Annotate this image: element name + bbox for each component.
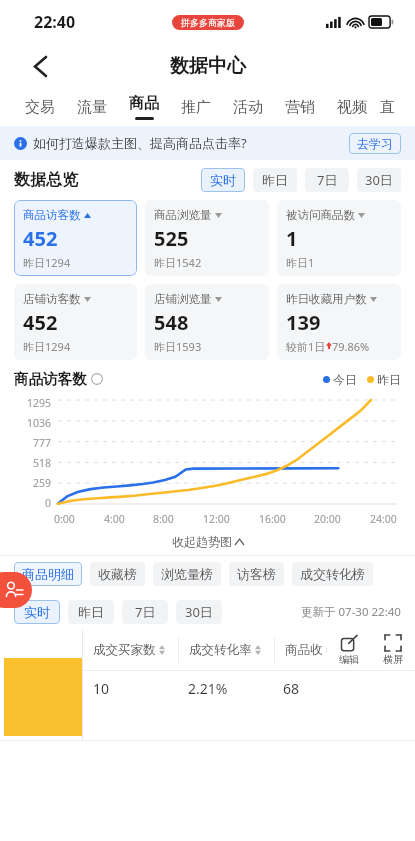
- staticText: 昨日1294: [23, 339, 71, 352]
- button[interactable]: 实时: [14, 600, 60, 624]
- staticText: 777: [33, 436, 52, 450]
- button[interactable]: 实时: [201, 168, 245, 192]
- button[interactable]: Help: [91, 373, 103, 385]
- staticText: 收起趋势图: [172, 534, 232, 549]
- staticText: 昨日1542: [154, 255, 202, 268]
- staticText: 10: [93, 679, 110, 698]
- staticText: 昨日: [377, 372, 401, 387]
- staticText: 昨日1593: [154, 339, 202, 352]
- staticText: 营销: [285, 98, 315, 117]
- button[interactable]: 成交买家数: [93, 630, 178, 670]
- staticText: 收藏榜: [98, 566, 137, 582]
- staticText: 商品访客数: [23, 208, 81, 222]
- button[interactable]: 浏览量榜: [153, 562, 221, 586]
- staticText: 525: [154, 225, 189, 252]
- staticText: 昨日1: [286, 255, 315, 268]
- staticText: 1: [286, 225, 298, 252]
- button[interactable]: 收起趋势图: [172, 534, 244, 549]
- staticText: 0:00: [54, 512, 75, 526]
- button[interactable]: 商品浏览量: [145, 200, 269, 276]
- staticText: 实时: [24, 604, 50, 620]
- staticText: 推广: [181, 98, 211, 117]
- staticText: 今日: [333, 372, 357, 387]
- staticText: 商品浏览量: [154, 208, 212, 222]
- staticText: 20:00: [314, 512, 341, 526]
- button[interactable]: 30日: [357, 168, 401, 192]
- staticText: 交易: [25, 98, 55, 117]
- staticText: 259: [33, 476, 52, 490]
- button[interactable]: 成交转化榜: [292, 562, 373, 586]
- staticText: 昨日: [262, 172, 288, 188]
- button[interactable]: 商品收: [285, 630, 415, 670]
- staticText: 去学习: [357, 136, 393, 151]
- staticText: 被访问商品数: [286, 208, 355, 222]
- button[interactable]: Landscape: [371, 635, 415, 666]
- button[interactable]: 营销: [274, 88, 326, 126]
- staticText: 30日: [365, 171, 393, 189]
- staticText: 4:00: [104, 512, 125, 526]
- staticText: 访客榜: [237, 566, 276, 582]
- staticText: 商品: [129, 94, 159, 113]
- button[interactable]: 推广: [170, 88, 222, 126]
- button[interactable]: 视频: [326, 88, 378, 126]
- button[interactable]: 昨日收藏用户数: [277, 284, 401, 360]
- staticText: 成交买家数: [93, 642, 156, 658]
- staticText: 成交转化榜: [300, 566, 365, 582]
- staticText: 数据总览: [14, 170, 78, 190]
- staticText: 452: [23, 225, 58, 252]
- staticText: 昨日: [78, 604, 104, 620]
- button[interactable]: 成交转化率: [189, 630, 274, 670]
- staticText: 活动: [233, 98, 263, 117]
- staticText: 1295: [27, 396, 52, 410]
- button[interactable]: Back: [20, 46, 60, 86]
- staticText: 成交转化率: [189, 642, 252, 658]
- button[interactable]: 被访问商品数: [277, 200, 401, 276]
- staticText: 昨日收藏用户数: [286, 292, 367, 306]
- staticText: 68: [283, 679, 300, 698]
- button[interactable]: Switch account: [0, 572, 32, 608]
- button[interactable]: 流量: [66, 88, 118, 126]
- staticText: 79.86%: [332, 339, 370, 352]
- staticText: 30日: [185, 603, 213, 621]
- button[interactable]: 昨日: [253, 168, 297, 192]
- staticText: 编辑: [339, 653, 359, 666]
- staticText: 如何打造爆款主图、提高商品点击率?: [33, 134, 247, 152]
- staticText: 店铺浏览量: [154, 292, 212, 306]
- button[interactable]: 直: [378, 88, 396, 126]
- staticText: 16:00: [259, 512, 286, 526]
- button[interactable]: 商品: [118, 88, 170, 126]
- button[interactable]: 访客榜: [229, 562, 284, 586]
- staticText: 22:40: [34, 11, 76, 33]
- staticText: 较前1日: [286, 339, 326, 352]
- staticText: 8:00: [153, 512, 174, 526]
- staticText: 直: [380, 98, 395, 117]
- staticText: 12:00: [203, 512, 230, 526]
- staticText: 数据中心: [170, 54, 246, 78]
- staticText: 0: [45, 496, 52, 510]
- button[interactable]: Edit: [327, 635, 371, 666]
- button[interactable]: 30日: [176, 600, 222, 624]
- staticText: 452: [23, 309, 58, 336]
- staticText: 7日: [317, 171, 338, 189]
- button[interactable]: 昨日: [68, 600, 114, 624]
- staticText: 518: [33, 456, 52, 470]
- button[interactable]: 商品明细: [14, 562, 82, 586]
- button[interactable]: 商品访客数: [14, 200, 137, 276]
- staticText: 更新于 07-30 22:40: [301, 604, 401, 620]
- staticText: 548: [154, 309, 189, 336]
- button[interactable]: 收藏榜: [90, 562, 145, 586]
- staticText: 横屏: [383, 653, 403, 666]
- button[interactable]: 店铺访客数: [14, 284, 137, 360]
- button[interactable]: 交易: [14, 88, 66, 126]
- button[interactable]: 店铺浏览量: [145, 284, 269, 360]
- staticText: 24:00: [370, 512, 397, 526]
- button[interactable]: 活动: [222, 88, 274, 126]
- button[interactable]: 7日: [122, 600, 168, 624]
- button[interactable]: 7日: [305, 168, 349, 192]
- staticText: 流量: [77, 98, 107, 117]
- button[interactable]: 去学习: [349, 133, 401, 154]
- staticText: 商品收: [285, 642, 323, 658]
- staticText: 商品访客数: [14, 370, 87, 388]
- staticText: 实时: [210, 172, 236, 188]
